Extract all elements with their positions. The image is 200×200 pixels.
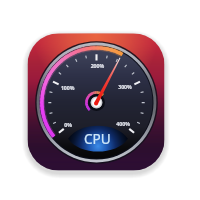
button[interactable]: CPU monitor app icon	[0, 0, 200, 200]
